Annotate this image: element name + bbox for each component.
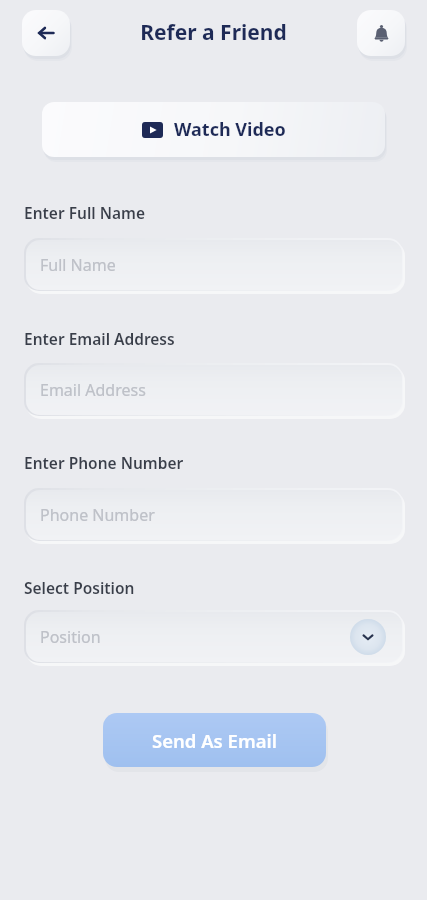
button[interactable]: Position [24, 610, 403, 663]
button[interactable]: Notifications [357, 10, 405, 56]
staticText: Full Name [40, 254, 116, 276]
staticText: Phone Number [40, 504, 155, 526]
staticText: Watch Video [174, 117, 286, 142]
staticText: Email Address [40, 379, 146, 401]
staticText: Refer a Friend [140, 18, 287, 47]
button[interactable]: Phone Number [24, 488, 403, 541]
button[interactable]: Watch Video [42, 102, 385, 157]
button[interactable]: Full Name [24, 238, 403, 291]
button[interactable]: Send As Email [103, 713, 326, 767]
button[interactable]: Back [22, 10, 70, 56]
staticText: Enter Full Name [24, 202, 145, 223]
staticText: Select Position [24, 577, 135, 598]
staticText: Position [40, 626, 101, 648]
button[interactable]: Email Address [24, 363, 403, 416]
button[interactable]: Open position list [350, 619, 386, 655]
staticText: Enter Phone Number [24, 452, 184, 473]
staticText: Send As Email [152, 728, 277, 753]
staticText: Enter Email Address [24, 328, 175, 349]
